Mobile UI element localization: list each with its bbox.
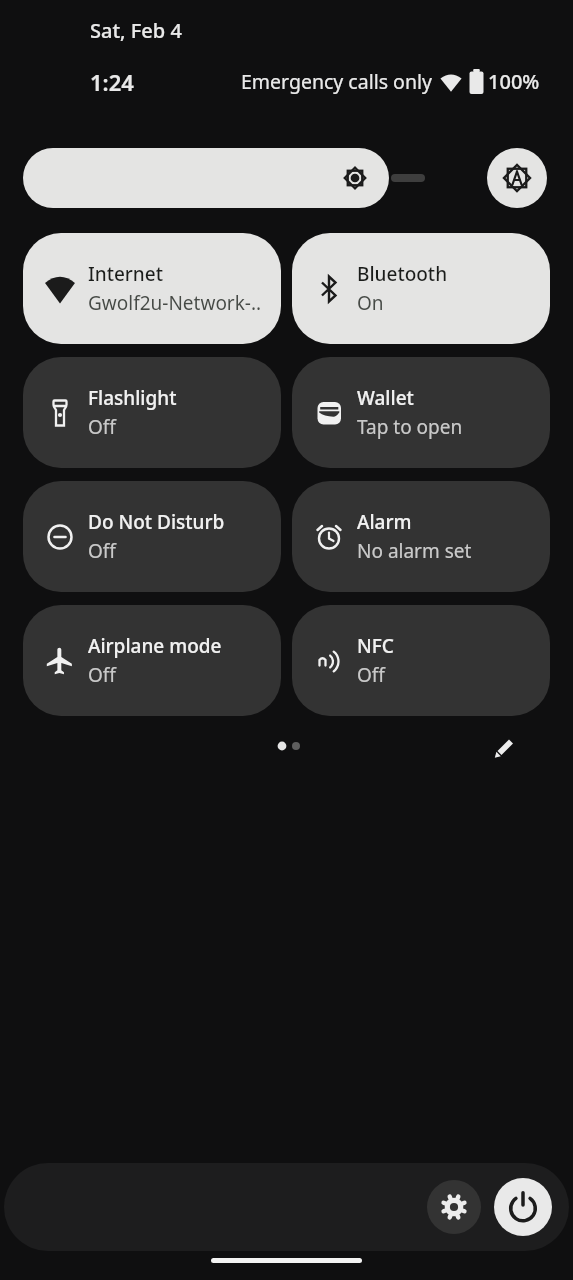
staticText: 100% bbox=[488, 68, 540, 95]
button[interactable]: Do Not Disturb bbox=[23, 481, 281, 592]
staticText: Tap to open bbox=[357, 414, 463, 440]
staticText: Sat, Feb 4 bbox=[90, 17, 182, 44]
staticText: Wallet bbox=[357, 385, 414, 411]
staticText: Gwolf2u-Network-.. bbox=[88, 290, 262, 316]
staticText: NFC bbox=[357, 633, 394, 659]
button[interactable]: Airplane mode bbox=[23, 605, 281, 716]
staticText: Emergency calls only bbox=[241, 68, 432, 95]
button[interactable]: Alarm bbox=[292, 481, 550, 592]
staticText: Do Not Disturb bbox=[88, 509, 225, 535]
button[interactable] bbox=[23, 148, 389, 208]
staticText: Off bbox=[88, 414, 116, 440]
button[interactable]: Internet bbox=[23, 233, 281, 344]
button[interactable]: Wallet bbox=[292, 357, 550, 468]
staticText: Off bbox=[88, 662, 116, 688]
staticText: Flashlight bbox=[88, 385, 177, 411]
button[interactable] bbox=[494, 1178, 552, 1236]
staticText: Off bbox=[88, 538, 116, 564]
button[interactable] bbox=[487, 148, 547, 208]
button[interactable]: Flashlight bbox=[23, 357, 281, 468]
staticText: Bluetooth bbox=[357, 261, 448, 287]
staticText: 1:24 bbox=[90, 67, 134, 97]
button[interactable] bbox=[427, 1180, 481, 1234]
staticText: Internet bbox=[88, 261, 163, 287]
staticText: On bbox=[357, 290, 384, 316]
button[interactable] bbox=[491, 733, 519, 761]
staticText: No alarm set bbox=[357, 538, 472, 564]
staticText: Alarm bbox=[357, 509, 412, 535]
staticText: Airplane mode bbox=[88, 633, 222, 659]
staticText: Off bbox=[357, 662, 385, 688]
button[interactable]: NFC bbox=[292, 605, 550, 716]
button[interactable]: Bluetooth bbox=[292, 233, 550, 344]
